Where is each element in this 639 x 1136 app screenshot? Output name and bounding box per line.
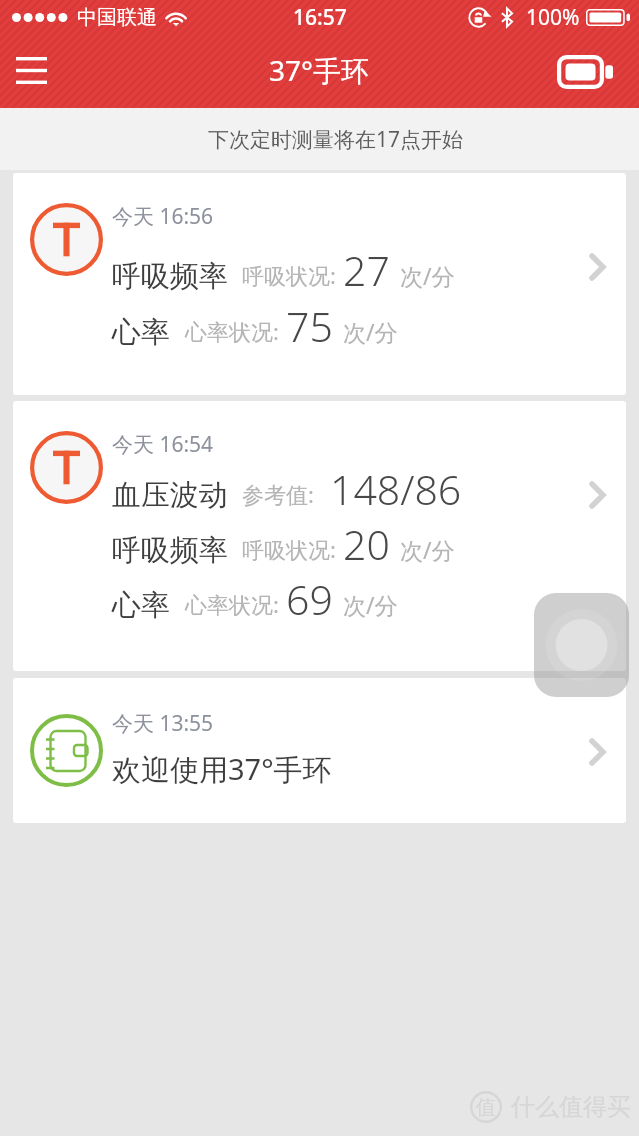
staticText: 呼吸状况: (242, 260, 336, 290)
button[interactable]: 今天 16:56 (13, 173, 626, 395)
staticText: 呼吸状况: (242, 534, 336, 564)
staticText: 心率状况: (185, 316, 279, 346)
staticText: 37°手环 (269, 51, 370, 89)
staticText: 血压波动 (112, 477, 228, 514)
staticText: 心率 (112, 314, 170, 351)
staticText: 69 (286, 571, 333, 627)
staticText: 今天 13:55 (112, 709, 214, 738)
staticText: 参考值: (242, 479, 314, 509)
button[interactable]: Menu (3, 42, 59, 98)
staticText: 16:57 (293, 3, 347, 32)
staticText: 20 (343, 516, 390, 572)
button[interactable]: Battery status (556, 43, 614, 101)
staticText: 值 (476, 1095, 496, 1120)
button[interactable]: 今天 16:54 (13, 401, 626, 671)
staticText: 下次定时测量将在17点开始 (208, 125, 464, 154)
staticText: 次/分 (343, 316, 398, 347)
button[interactable]: 今天 13:55 (13, 678, 626, 823)
button[interactable]: AssistiveTouch (534, 593, 629, 697)
staticText: 次/分 (343, 589, 398, 620)
staticText: 75 (286, 298, 333, 354)
staticText: 心率 (112, 587, 170, 624)
staticText: 什么值得买 (511, 1092, 631, 1122)
staticText: 次/分 (400, 534, 455, 565)
staticText: 心率状况: (185, 589, 279, 619)
staticText: 次/分 (400, 260, 455, 291)
staticText: 中国联通 (77, 5, 157, 30)
other: Details (589, 481, 606, 509)
staticText: 今天 16:54 (112, 430, 214, 459)
other: Details (589, 738, 606, 766)
staticText: 27 (343, 242, 390, 298)
staticText: 欢迎使用37°手环 (112, 749, 332, 789)
staticText: 100% (526, 3, 580, 32)
staticText: 呼吸频率 (112, 258, 228, 295)
staticText: 呼吸频率 (112, 532, 228, 569)
other: Details (589, 253, 606, 281)
staticText: 148/86 (330, 461, 462, 517)
staticText: 今天 16:56 (112, 202, 214, 231)
